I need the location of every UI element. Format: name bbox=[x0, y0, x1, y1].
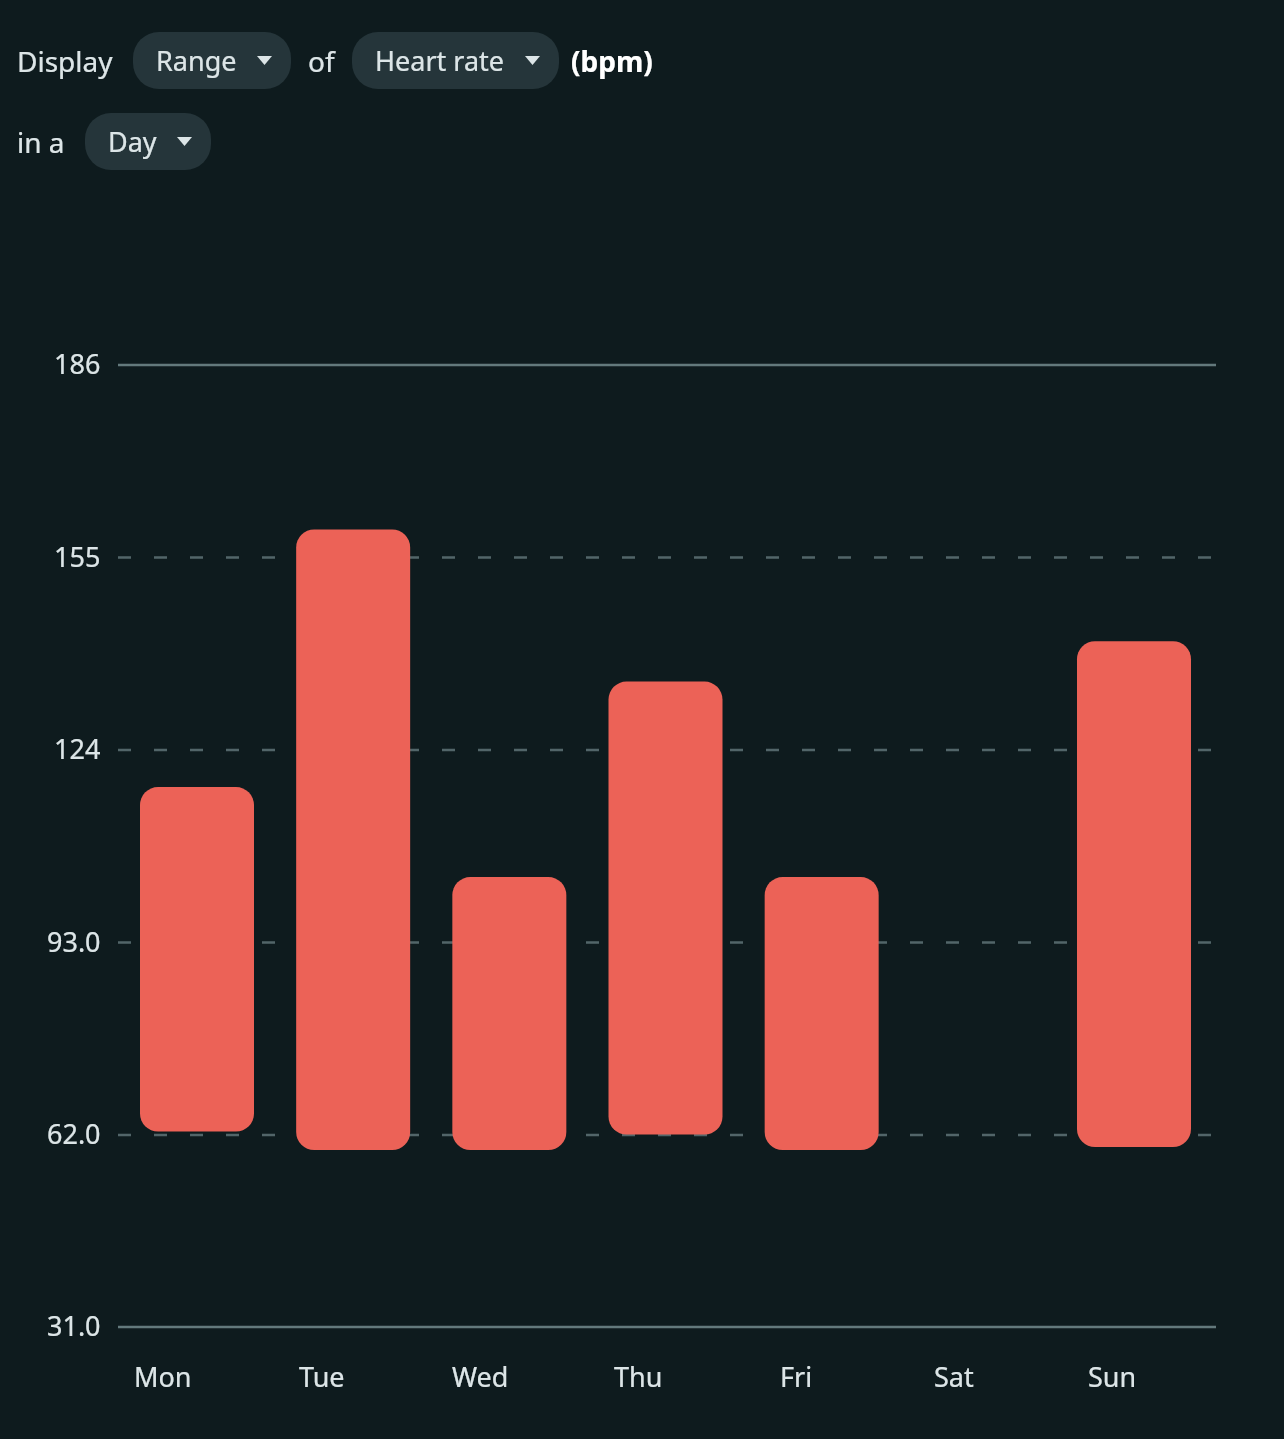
staticText: 186 bbox=[54, 345, 101, 382]
staticText: Fri bbox=[780, 1358, 813, 1395]
staticText: Display bbox=[17, 42, 113, 80]
other: Open Heart rate menu bbox=[525, 56, 540, 65]
staticText: (bpm) bbox=[571, 42, 653, 80]
other: Open Day menu bbox=[177, 137, 192, 146]
staticText: in a bbox=[17, 123, 65, 161]
button[interactable]: Heart rate bbox=[352, 32, 559, 89]
staticText: Sat bbox=[934, 1358, 974, 1395]
staticText: Tue bbox=[299, 1358, 345, 1395]
button[interactable]: Range bbox=[133, 32, 291, 89]
staticText: 93.0 bbox=[47, 923, 101, 960]
staticText: 31.0 bbox=[47, 1307, 101, 1344]
other: Open Range menu bbox=[257, 56, 272, 65]
staticText: Mon bbox=[134, 1358, 192, 1395]
staticText: Wed bbox=[452, 1358, 509, 1395]
staticText: 155 bbox=[54, 538, 101, 575]
staticText: 124 bbox=[54, 730, 101, 767]
staticText: Thu bbox=[614, 1358, 663, 1395]
staticText: of bbox=[308, 42, 335, 80]
staticText: Day bbox=[108, 123, 157, 160]
staticText: 62.0 bbox=[47, 1115, 101, 1152]
staticText: Heart rate bbox=[375, 42, 505, 79]
staticText: Range bbox=[156, 42, 237, 79]
button[interactable]: Day bbox=[85, 113, 211, 170]
staticText: Sun bbox=[1088, 1358, 1137, 1395]
